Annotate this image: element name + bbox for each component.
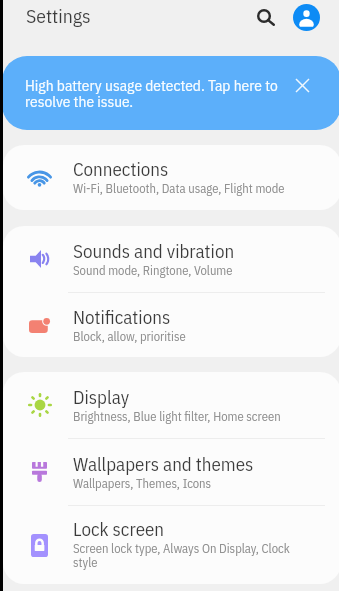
staticText: Sounds and vibration <box>73 239 235 264</box>
staticText: Notifications <box>73 305 171 330</box>
button[interactable]: Display <box>3 372 339 438</box>
button[interactable]: Notifications <box>3 293 339 357</box>
staticText: Brightness, Blue light filter, Home scre… <box>73 408 281 424</box>
button[interactable]: High battery usage detected. Tap here to… <box>2 56 339 130</box>
staticText: Wallpapers and themes <box>73 452 254 477</box>
button[interactable]: Search <box>252 3 280 31</box>
staticText: Screen lock type, Always On Display, Clo… <box>73 540 313 571</box>
staticText: High battery usage detected. Tap here to… <box>25 75 287 111</box>
staticText: Sound mode, Ringtone, Volume <box>73 262 233 278</box>
button[interactable]: Account <box>292 3 320 31</box>
button[interactable]: Lock screen <box>3 506 339 584</box>
staticText: Settings <box>26 3 91 28</box>
staticText: Lock screen <box>73 517 165 542</box>
staticText: Wi-Fi, Bluetooth, Data usage, Flight mod… <box>73 180 285 196</box>
button[interactable]: Sounds and vibration <box>3 226 339 292</box>
staticText: Connections <box>73 157 169 182</box>
staticText: Display <box>73 385 130 410</box>
staticText: Wallpapers, Themes, Icons <box>73 475 212 491</box>
staticText: Block, allow, prioritise <box>73 328 186 344</box>
button[interactable]: Connections <box>3 145 339 210</box>
button[interactable]: Dismiss <box>288 71 316 99</box>
button[interactable]: Wallpapers and themes <box>3 439 339 505</box>
